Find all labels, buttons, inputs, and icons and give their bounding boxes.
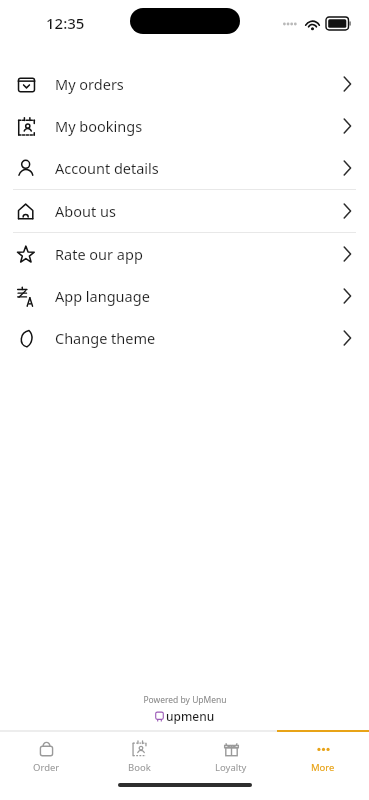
staticText: Account details xyxy=(55,158,159,178)
staticText: Order xyxy=(33,761,60,774)
staticText: More xyxy=(311,761,335,774)
button[interactable]: Change theme xyxy=(0,317,369,359)
staticText: Powered by UpMenu xyxy=(143,694,227,706)
staticText: My orders xyxy=(55,74,124,94)
button[interactable]: My bookings xyxy=(0,105,369,147)
button[interactable]: Loyalty xyxy=(185,732,277,778)
staticText: App language xyxy=(55,286,150,306)
button[interactable]: About us xyxy=(0,190,369,232)
button[interactable]: My orders xyxy=(0,63,369,105)
staticText: My bookings xyxy=(55,116,143,136)
button[interactable]: Order xyxy=(0,732,93,778)
staticText: Loyalty xyxy=(215,761,247,774)
staticText: About us xyxy=(55,201,116,221)
staticText: 12:35 xyxy=(46,13,85,33)
button[interactable]: More xyxy=(277,732,369,778)
staticText: upmenu xyxy=(166,708,215,724)
button[interactable]: Rate our app xyxy=(0,233,369,275)
button[interactable]: App language xyxy=(0,275,369,317)
staticText: Rate our app xyxy=(55,244,143,264)
button[interactable]: Book xyxy=(93,732,185,778)
staticText: Book xyxy=(128,761,151,774)
staticText: Change theme xyxy=(55,328,156,348)
button[interactable]: Account details xyxy=(0,147,369,189)
